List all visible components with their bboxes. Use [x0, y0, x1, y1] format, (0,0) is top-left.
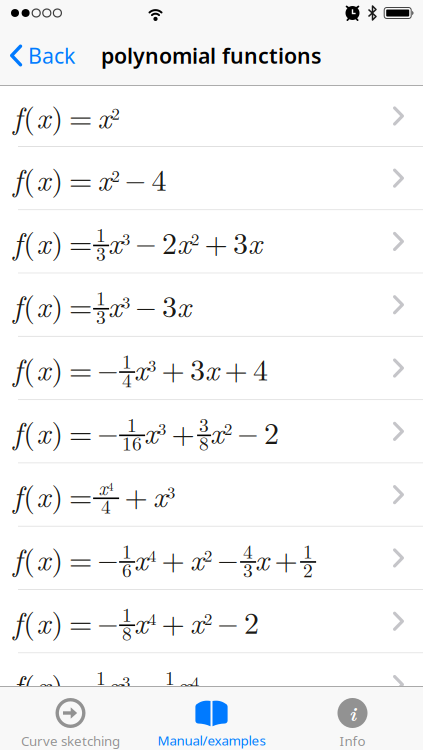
staticText: x2: [98, 157, 120, 199]
staticText: f: [13, 347, 22, 389]
button[interactable]: Manual/examples: [141, 687, 282, 749]
staticText: Curve sketching: [21, 732, 120, 750]
button[interactable]: Curve sketching: [0, 687, 141, 750]
staticText: x4: [134, 601, 156, 642]
staticText: +: [162, 600, 185, 642]
staticText: 3x: [233, 221, 262, 262]
staticText: f: [13, 664, 22, 705]
staticText: ): [52, 95, 64, 137]
staticText: 3: [243, 555, 253, 583]
staticText: =: [69, 284, 92, 325]
staticText: Manual/examples: [157, 731, 265, 749]
button[interactable]: f: [0, 527, 423, 590]
button[interactable]: f: [0, 337, 423, 400]
staticText: ): [52, 284, 64, 325]
staticText: 2x2: [162, 221, 199, 262]
staticText: (: [23, 347, 35, 389]
button[interactable]: f: [0, 86, 423, 147]
staticText: 2: [264, 411, 279, 452]
staticText: x3: [144, 411, 166, 452]
button[interactable]: f: [0, 274, 423, 337]
staticText: x: [255, 537, 269, 579]
staticText: +: [275, 537, 298, 579]
staticText: 3: [96, 239, 106, 266]
staticText: −: [218, 603, 239, 640]
staticText: f: [13, 601, 22, 642]
staticText: 1: [96, 663, 106, 691]
staticText: 2: [244, 600, 259, 642]
staticText: 1: [96, 220, 106, 248]
staticText: 3: [96, 302, 106, 330]
staticText: Info: [339, 732, 365, 750]
staticText: =: [69, 95, 92, 137]
button[interactable]: f: [0, 210, 423, 274]
staticText: =: [69, 411, 92, 452]
staticText: +: [225, 347, 248, 389]
staticText: =: [69, 600, 92, 642]
staticText: f: [13, 537, 22, 579]
staticText: 4: [152, 157, 167, 199]
staticText: −: [98, 539, 119, 576]
staticText: 8: [199, 429, 209, 456]
staticText: x: [36, 157, 50, 199]
staticText: −: [136, 666, 157, 703]
staticText: x: [36, 221, 50, 262]
staticText: (: [23, 664, 35, 705]
staticText: x: [36, 537, 50, 579]
staticText: 1: [303, 537, 313, 564]
staticText: polynomial functions: [101, 41, 322, 70]
staticText: (: [23, 284, 35, 325]
staticText: x2: [210, 411, 232, 452]
staticText: +: [162, 347, 185, 389]
button[interactable]: f: [0, 400, 423, 463]
staticText: +: [162, 537, 185, 579]
staticText: x: [36, 664, 50, 705]
staticText: f: [13, 411, 22, 452]
staticText: x: [36, 474, 50, 515]
staticText: ): [52, 664, 64, 705]
staticText: −: [136, 286, 157, 323]
staticText: x3: [134, 347, 156, 389]
staticText: ): [52, 157, 64, 199]
staticText: (: [23, 537, 35, 579]
staticText: (: [23, 157, 35, 199]
staticText: f: [13, 474, 22, 515]
staticText: 1: [96, 283, 106, 311]
staticText: i: [349, 698, 356, 727]
staticText: x2: [190, 537, 212, 579]
button[interactable]: f: [0, 147, 423, 210]
staticText: x3: [108, 664, 130, 705]
staticText: 8: [122, 619, 132, 646]
staticText: −: [98, 603, 119, 640]
staticText: −: [136, 223, 157, 260]
button[interactable]: Back: [0, 41, 75, 70]
staticText: x3: [153, 474, 175, 515]
staticText: x3: [108, 221, 130, 262]
staticText: (: [23, 221, 35, 262]
staticText: +: [125, 474, 148, 515]
staticText: x: [36, 411, 50, 452]
staticText: −: [218, 539, 239, 576]
staticText: (: [23, 95, 35, 137]
button[interactable]: f: [0, 590, 423, 653]
button[interactable]: f: [0, 463, 423, 527]
staticText: 1: [165, 663, 175, 691]
staticText: 2: [303, 555, 313, 583]
staticText: x: [36, 601, 50, 642]
staticText: (: [23, 411, 35, 452]
button[interactable]: i: [282, 687, 423, 750]
staticText: −: [238, 413, 259, 450]
staticText: ): [52, 347, 64, 389]
staticText: x4: [99, 474, 114, 500]
staticText: f: [13, 284, 22, 325]
staticText: x4: [134, 537, 156, 579]
staticText: f: [13, 95, 22, 137]
staticText: x4: [177, 664, 199, 705]
button[interactable]: f: [0, 653, 423, 717]
staticText: +: [205, 221, 228, 262]
staticText: ): [52, 411, 64, 452]
staticText: =: [69, 347, 92, 389]
staticText: x2: [190, 601, 212, 642]
staticText: 4: [101, 492, 111, 519]
staticText: =: [69, 537, 92, 579]
